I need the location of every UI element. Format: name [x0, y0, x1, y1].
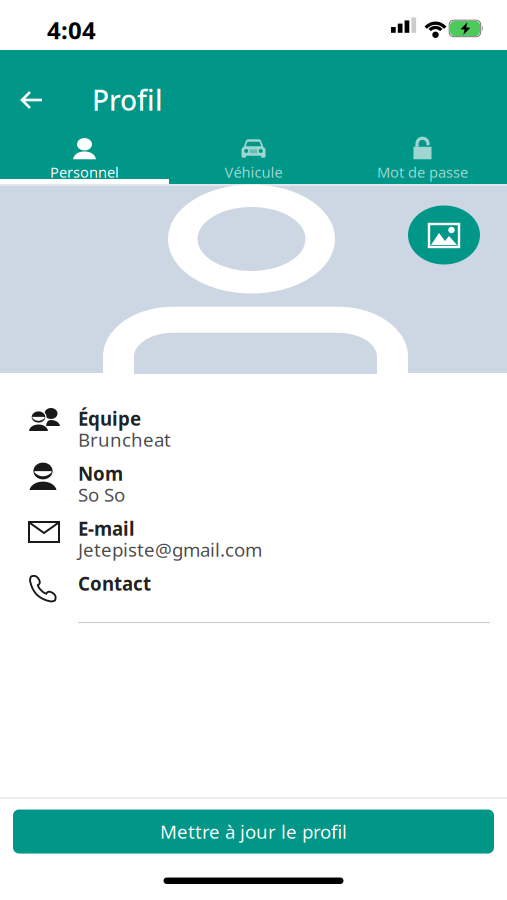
staticText: Contact: [78, 571, 151, 596]
staticText: Mot de passe: [377, 162, 468, 182]
staticText: Jetepiste@gmail.com: [78, 537, 262, 562]
button[interactable]: Mettre à jour le profil: [13, 809, 494, 853]
button[interactable]: Change photo: [408, 205, 480, 265]
staticText: So So: [78, 482, 125, 507]
staticText: Nom: [78, 461, 123, 486]
button[interactable]: Personnel: [0, 137, 169, 182]
staticText: Équipe: [78, 406, 141, 431]
staticText: Véhicule: [224, 162, 282, 182]
staticText: Bruncheat: [78, 427, 171, 452]
button[interactable]: Mot de passe: [338, 137, 507, 182]
button[interactable]: Back: [0, 88, 50, 112]
staticText: 4:04: [47, 14, 96, 46]
staticText: Profil: [92, 81, 163, 119]
button[interactable]: Véhicule: [169, 137, 338, 182]
staticText: Personnel: [50, 162, 119, 182]
staticText: Mettre à jour le profil: [160, 819, 347, 844]
staticText: E-mail: [78, 516, 135, 541]
